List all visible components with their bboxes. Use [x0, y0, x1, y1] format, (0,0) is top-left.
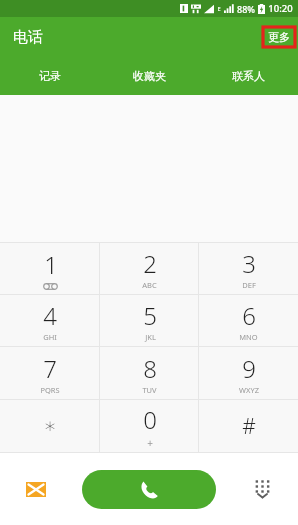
- staticText: GHI: [43, 332, 57, 342]
- button[interactable]: #: [199, 400, 298, 452]
- staticText: ABC: [142, 280, 157, 290]
- button[interactable]: 2: [100, 243, 199, 294]
- button[interactable]: 7: [0, 347, 100, 399]
- staticText: +: [147, 436, 153, 450]
- staticText: 3: [242, 247, 256, 280]
- button[interactable]: 0: [100, 400, 199, 452]
- button[interactable]: Call: [82, 470, 216, 509]
- staticText: 9: [242, 352, 256, 385]
- staticText: E: [217, 5, 221, 12]
- staticText: #: [242, 412, 256, 441]
- button[interactable]: 4: [0, 295, 100, 346]
- button[interactable]: 9: [199, 347, 298, 399]
- staticText: 6: [242, 299, 256, 332]
- button[interactable]: 收藏夹: [100, 57, 199, 95]
- staticText: 5: [143, 299, 157, 332]
- staticText: 更多: [268, 30, 290, 44]
- staticText: DEF: [242, 280, 256, 290]
- staticText: 1: [44, 248, 58, 281]
- staticText: 4: [43, 299, 57, 332]
- staticText: 记录: [39, 69, 61, 83]
- staticText: PQRS: [40, 385, 60, 395]
- staticText: TUV: [142, 385, 157, 395]
- staticText: 电话: [13, 28, 43, 47]
- button[interactable]: 更多: [263, 27, 295, 47]
- button[interactable]: 8: [100, 347, 199, 399]
- button[interactable]: Hide keypad: [244, 471, 280, 507]
- staticText: 0: [143, 403, 157, 436]
- staticText: JKL: [145, 332, 156, 342]
- staticText: 10:20: [268, 2, 293, 15]
- staticText: 8: [143, 352, 157, 385]
- staticText: 88%: [237, 3, 255, 15]
- staticText: 7: [43, 352, 57, 385]
- staticText: ∗: [43, 414, 57, 438]
- button[interactable]: 6: [199, 295, 298, 346]
- button[interactable]: 1: [0, 243, 100, 294]
- button[interactable]: 5: [100, 295, 199, 346]
- staticText: 收藏夹: [133, 69, 166, 83]
- staticText: 联系人: [232, 69, 265, 83]
- staticText: WXYZ: [239, 385, 259, 395]
- button[interactable]: 联系人: [199, 57, 298, 95]
- staticText: MNO: [239, 332, 258, 342]
- button[interactable]: 3: [199, 243, 298, 294]
- button[interactable]: ∗: [0, 400, 100, 452]
- button[interactable]: 记录: [0, 57, 100, 95]
- button[interactable]: Message: [18, 471, 54, 507]
- staticText: 2: [143, 247, 157, 280]
